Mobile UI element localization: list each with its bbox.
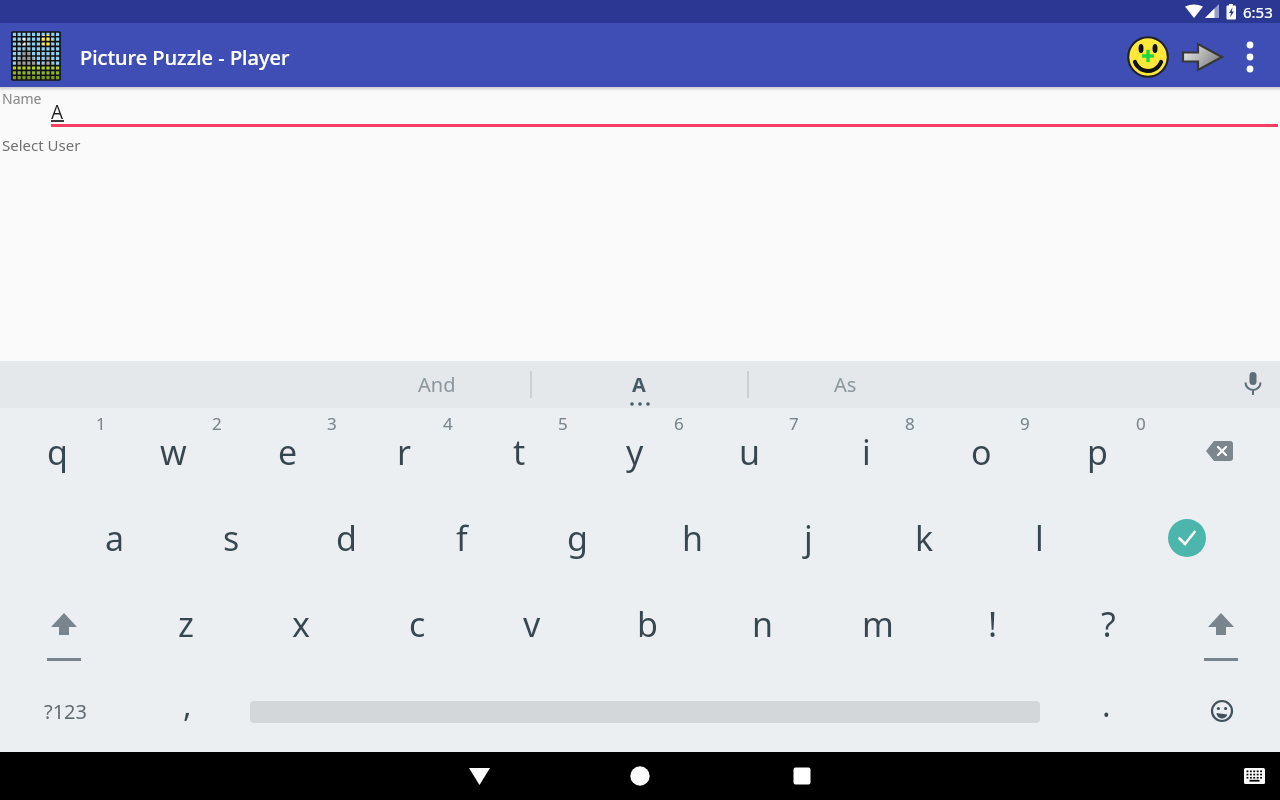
button[interactable]: And [337,361,537,408]
button[interactable]: l [982,495,1096,581]
button[interactable]: g [520,495,634,581]
staticText: v [523,601,541,647]
button[interactable]: c [360,581,474,667]
staticText: Select User [2,135,81,155]
staticText: 5 [558,412,568,435]
staticText: 0 [1136,412,1146,435]
staticText: A [632,371,646,398]
staticText: d [336,515,357,561]
button[interactable] [1164,669,1280,752]
staticText: 7 [789,412,799,435]
button[interactable]: v [475,581,589,667]
staticText: m [862,601,894,647]
button[interactable]: A [44,96,1280,128]
staticText: , [183,683,192,727]
button[interactable]: j [751,495,865,581]
button[interactable]: p [1040,409,1154,495]
button[interactable]: f [405,495,519,581]
staticText: 8 [905,412,915,435]
button[interactable] [1158,408,1280,494]
button[interactable] [1234,39,1266,75]
staticText: s [223,515,240,561]
button[interactable] [5,581,123,666]
button[interactable] [1127,36,1169,78]
staticText: ? [1101,601,1116,647]
button[interactable]: ! [936,581,1050,667]
staticText: x [292,601,310,647]
staticText: And [418,371,456,398]
staticText: r [397,429,412,475]
staticText: a [105,515,125,561]
staticText: t [513,429,526,475]
button[interactable]: i [809,409,923,495]
staticText: 4 [443,412,453,435]
staticText: 9 [1020,412,1030,435]
staticText: k [915,515,934,561]
staticText: n [752,601,774,647]
button[interactable] [1234,760,1274,792]
staticText: ! [988,601,998,647]
button[interactable] [1162,581,1280,666]
button[interactable]: q [0,409,114,495]
button[interactable]: o [924,409,1038,495]
button[interactable]: m [821,581,935,667]
button[interactable]: As [745,361,945,408]
button[interactable] [455,760,503,792]
staticText: o [971,429,992,475]
button[interactable]: y [578,409,692,495]
staticText: f [456,515,468,561]
button[interactable] [778,760,826,792]
button[interactable]: A [549,361,729,408]
button[interactable]: t [462,409,576,495]
staticText: e [278,429,298,475]
button[interactable] [1181,43,1225,71]
button[interactable]: w [116,409,230,495]
button[interactable] [616,760,664,792]
staticText: z [178,601,194,647]
button[interactable]: h [636,495,750,581]
staticText: A [51,99,64,125]
button[interactable]: , [132,662,242,748]
button[interactable]: d [289,495,403,581]
staticText: ?123 [44,698,87,725]
button[interactable]: ?123 [1,668,129,754]
button[interactable]: n [706,581,820,667]
staticText: 2 [212,412,222,435]
button[interactable]: ? [1051,581,1165,667]
button[interactable] [1129,495,1245,581]
staticText: Picture Puzzle - Player [80,44,290,71]
button[interactable]: u [693,409,807,495]
button[interactable]: e [231,409,345,495]
staticText: j [804,515,813,561]
button[interactable]: s [174,495,288,581]
staticText: l [1035,515,1044,561]
staticText: w [160,429,187,475]
button[interactable]: x [244,581,358,667]
staticText: 1 [96,412,106,435]
staticText: 3 [327,412,337,435]
staticText: i [862,429,871,475]
staticText: c [409,601,426,647]
button[interactable]: k [867,495,981,581]
staticText: 6 [674,412,684,435]
staticText: As [834,371,857,398]
staticText: q [47,429,68,475]
button[interactable] [12,32,60,80]
staticText: Name [2,89,42,108]
staticText: p [1087,429,1108,475]
staticText: . [1102,683,1111,727]
staticText: h [682,515,704,561]
button[interactable] [1240,371,1266,398]
button[interactable]: r [347,409,461,495]
staticText: g [567,515,588,561]
button[interactable]: b [590,581,704,667]
staticText: b [637,601,658,647]
staticText: u [739,429,761,475]
button[interactable]: a [58,495,172,581]
staticText: 6:53 [1243,2,1273,22]
button[interactable]: z [129,581,243,667]
button[interactable]: . [1051,662,1161,748]
staticText: y [626,429,644,475]
